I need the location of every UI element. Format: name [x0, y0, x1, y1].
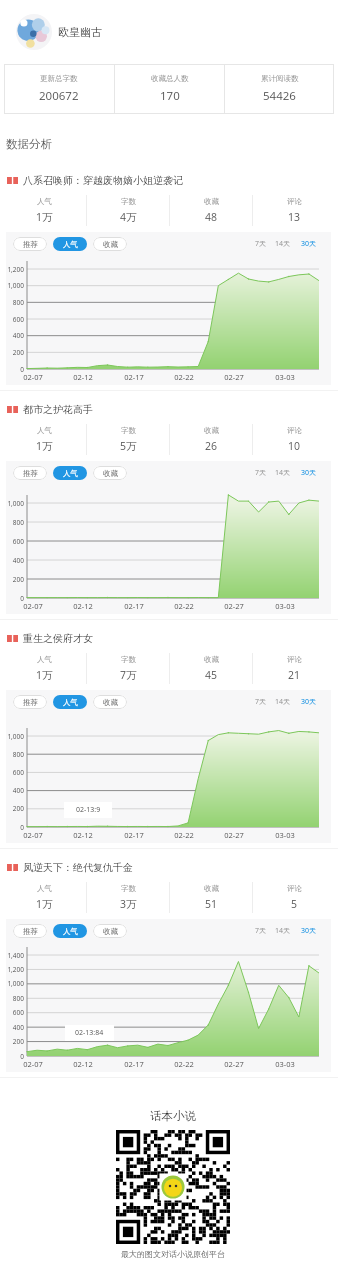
staticText: 收藏: [204, 197, 219, 206]
staticText: 话本小说: [150, 1109, 196, 1123]
staticText: 02-13:84: [75, 1028, 104, 1038]
staticText: 收藏: [103, 240, 118, 249]
button[interactable]: 30天: [301, 468, 317, 478]
button[interactable]: 30天: [301, 239, 317, 249]
button[interactable]: 人气: [53, 695, 87, 709]
button[interactable]: 收藏: [93, 466, 127, 480]
button[interactable]: 收藏: [93, 924, 127, 938]
button[interactable]: 7天: [255, 697, 267, 707]
staticText: 1,400: [6, 951, 24, 960]
staticText: 0: [6, 594, 24, 603]
staticText: 最大的图文对话小说原创平台: [121, 1249, 225, 1259]
button[interactable]: 14天: [275, 926, 291, 936]
staticText: 02-07: [13, 1059, 53, 1069]
staticText: 54426: [263, 88, 296, 104]
staticText: 5万: [120, 439, 137, 453]
staticText: 0: [6, 823, 24, 832]
staticText: 收藏: [103, 469, 118, 478]
staticText: 02-17: [114, 1059, 154, 1069]
button[interactable]: 7天: [255, 468, 267, 478]
button[interactable]: 推荐: [13, 695, 47, 709]
staticText: 02-07: [13, 830, 53, 840]
button[interactable]: 人气: [53, 466, 87, 480]
staticText: 800: [6, 750, 24, 759]
staticText: 02-22: [164, 601, 204, 611]
staticText: 400: [6, 556, 24, 565]
staticText: 02-07: [13, 601, 53, 611]
staticText: 0: [6, 1052, 24, 1061]
button[interactable]: 7天: [255, 926, 267, 936]
staticText: 推荐: [23, 927, 38, 936]
staticText: 800: [6, 994, 24, 1003]
staticText: 字数: [121, 197, 136, 206]
staticText: 累计阅读数: [261, 74, 299, 83]
staticText: 400: [6, 331, 24, 340]
staticText: 200: [6, 1037, 24, 1046]
staticText: 7万: [120, 668, 137, 682]
button[interactable]: 收藏: [93, 695, 127, 709]
staticText: 推荐: [23, 240, 38, 249]
staticText: 评论: [287, 884, 302, 893]
staticText: 1万: [36, 897, 53, 911]
staticText: 1,000: [6, 979, 24, 988]
staticText: 51: [205, 897, 218, 911]
staticText: 数据分析: [6, 137, 52, 151]
staticText: 02-22: [164, 372, 204, 382]
staticText: 评论: [287, 426, 302, 435]
staticText: 收藏: [103, 927, 118, 936]
staticText: 02-27: [214, 1059, 254, 1069]
staticText: 02-12: [63, 1059, 103, 1069]
staticText: 都市之护花高手: [23, 403, 93, 416]
staticText: 02-17: [114, 601, 154, 611]
staticText: 02-07: [13, 372, 53, 382]
button[interactable]: 14天: [275, 468, 291, 478]
staticText: 02-17: [114, 830, 154, 840]
staticText: 26: [205, 439, 218, 453]
staticText: 推荐: [23, 469, 38, 478]
staticText: 4万: [120, 210, 137, 224]
staticText: 欧皇幽古: [58, 25, 102, 39]
staticText: 人气: [37, 426, 52, 435]
staticText: 200: [6, 804, 24, 813]
staticText: 人气: [63, 698, 78, 707]
button[interactable]: 收藏: [93, 237, 127, 251]
staticText: 1,000: [6, 732, 24, 741]
button[interactable]: 7天: [255, 239, 267, 249]
button[interactable]: 14天: [275, 239, 291, 249]
staticText: 800: [6, 518, 24, 527]
staticText: 03-03: [265, 372, 305, 382]
staticText: 1,200: [6, 265, 24, 274]
button[interactable]: 推荐: [13, 237, 47, 251]
staticText: 更新总字数: [40, 74, 78, 83]
button[interactable]: 人气: [53, 237, 87, 251]
button[interactable]: 30天: [301, 926, 317, 936]
button[interactable]: 推荐: [13, 466, 47, 480]
staticText: 02-27: [214, 830, 254, 840]
button[interactable]: 推荐: [13, 924, 47, 938]
staticText: 02-22: [164, 830, 204, 840]
button[interactable]: 人气: [53, 924, 87, 938]
staticText: 02-13:9: [76, 805, 101, 815]
staticText: 600: [6, 768, 24, 777]
staticText: 字数: [121, 655, 136, 664]
button[interactable]: 用户头像: [16, 14, 52, 50]
staticText: 收藏: [204, 426, 219, 435]
staticText: 10: [288, 439, 301, 453]
staticText: 1万: [36, 439, 53, 453]
staticText: 人气: [37, 655, 52, 664]
staticText: 收藏: [204, 655, 219, 664]
staticText: 400: [6, 786, 24, 795]
button[interactable]: 14天: [275, 697, 291, 707]
staticText: 凤逆天下：绝代复仇千金: [23, 861, 133, 874]
staticText: 48: [205, 210, 218, 224]
staticText: 400: [6, 1023, 24, 1032]
staticText: 200672: [39, 88, 79, 104]
button[interactable]: 30天: [301, 697, 317, 707]
staticText: 13: [288, 210, 301, 224]
staticText: 21: [288, 668, 301, 682]
staticText: 03-03: [265, 1059, 305, 1069]
staticText: 字数: [121, 884, 136, 893]
staticText: 02-12: [63, 372, 103, 382]
staticText: 02-27: [214, 372, 254, 382]
staticText: 0: [6, 365, 24, 374]
